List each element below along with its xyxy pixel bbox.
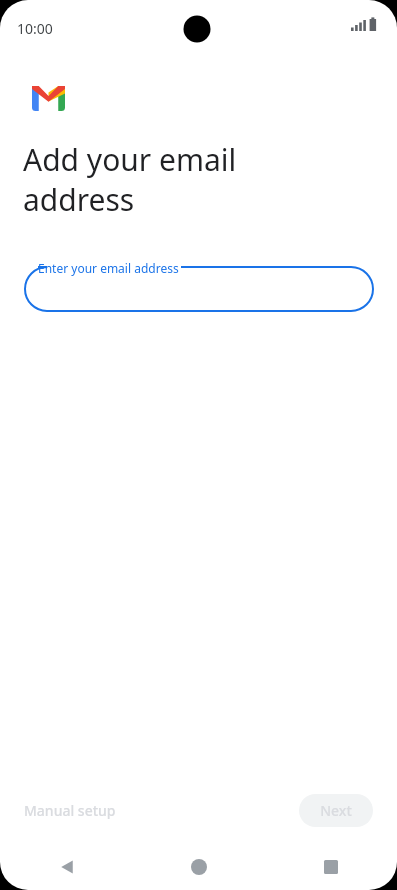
staticText: Next <box>320 801 352 820</box>
button[interactable]: Recent apps <box>265 843 397 890</box>
staticText: Add your email address <box>23 139 237 220</box>
button[interactable]: Next <box>299 794 373 827</box>
button[interactable]: Enter your email address <box>0 254 397 312</box>
button[interactable]: Manual setup <box>12 793 128 828</box>
button[interactable]: Back <box>0 843 133 890</box>
staticText: 10:00 <box>17 19 53 38</box>
staticText: Enter your email address <box>38 260 179 276</box>
button[interactable]: Home <box>133 843 265 890</box>
staticText: Manual setup <box>24 801 116 820</box>
